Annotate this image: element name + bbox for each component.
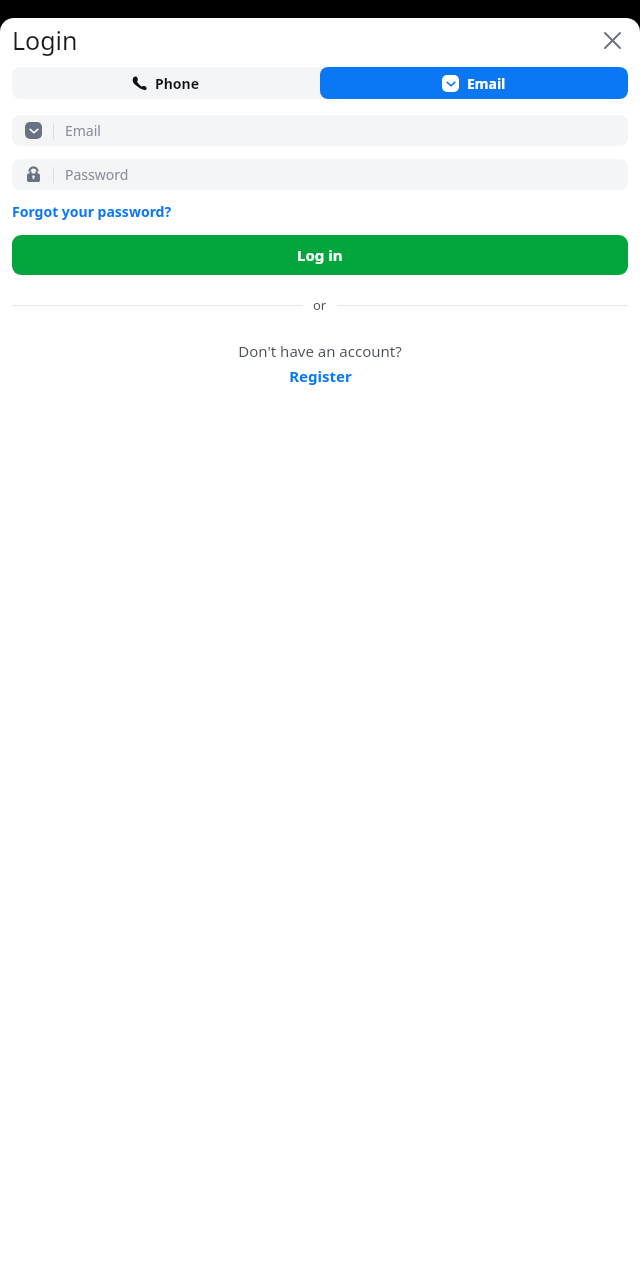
staticText: Login xyxy=(12,23,78,57)
staticText: Register xyxy=(289,366,352,386)
button[interactable]: Log in xyxy=(12,235,628,275)
button[interactable]: Password xyxy=(12,159,628,190)
staticText: Forgot your password? xyxy=(12,202,172,221)
staticText: or xyxy=(313,296,327,314)
staticText: Password xyxy=(65,165,129,184)
staticText: Phone xyxy=(155,74,200,93)
button[interactable]: Email xyxy=(12,115,628,146)
staticText: Email xyxy=(467,74,506,93)
button[interactable]: Forgot your password? xyxy=(12,202,172,221)
button[interactable]: Phone xyxy=(12,67,320,99)
button[interactable]: Register xyxy=(289,366,352,386)
button[interactable]: Email xyxy=(320,67,628,99)
staticText: Log in xyxy=(297,245,343,265)
staticText: Email xyxy=(65,121,101,140)
staticText: Don't have an account? xyxy=(238,341,402,361)
button[interactable]: Close xyxy=(594,22,630,58)
